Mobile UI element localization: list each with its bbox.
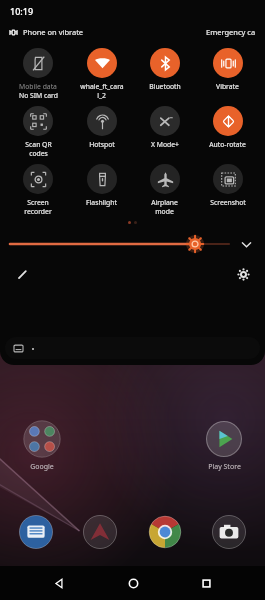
button[interactable]: Chrome xyxy=(147,514,183,550)
staticText: Screen xyxy=(27,198,49,207)
staticText: Mobile data xyxy=(19,82,57,91)
staticText: Google xyxy=(30,462,54,472)
staticText: whale_ft_cara xyxy=(80,82,124,91)
button[interactable]: Expand xyxy=(237,235,255,253)
button[interactable]: Recent apps xyxy=(191,568,221,598)
button[interactable]: Settings xyxy=(233,264,253,284)
button[interactable]: Home xyxy=(118,568,148,598)
button[interactable]: Play Store xyxy=(196,420,252,472)
button[interactable]: Edit xyxy=(12,264,32,284)
button[interactable]: Camera xyxy=(211,514,247,550)
button[interactable]: Screenshot xyxy=(196,164,259,207)
staticText: l_2 xyxy=(97,91,106,100)
button[interactable]: X Mode+ xyxy=(133,106,196,149)
staticText: Emergency ca xyxy=(206,27,256,37)
staticText: Flashlight xyxy=(86,198,117,207)
button[interactable]: Messages xyxy=(18,514,54,550)
staticText: mode xyxy=(155,207,174,216)
staticText: Bluetooth xyxy=(149,82,181,91)
staticText: 10:19 xyxy=(10,5,34,17)
staticText: X Mode+ xyxy=(151,140,179,149)
button[interactable] xyxy=(5,337,260,359)
staticText: Airplane xyxy=(151,198,178,207)
staticText: Hotspot xyxy=(89,140,115,149)
staticText: Scan QR xyxy=(25,140,52,149)
staticText: Vibrate xyxy=(216,82,239,91)
button[interactable]: Google xyxy=(14,420,70,472)
staticText: Phone on vibrate xyxy=(23,27,84,37)
button[interactable] xyxy=(10,234,229,254)
staticText: Play Store xyxy=(208,462,241,472)
button[interactable]: Auto-rotate xyxy=(196,106,259,149)
button[interactable]: Airplane xyxy=(133,164,196,216)
button[interactable]: whale_ft_cara xyxy=(70,48,133,100)
staticText: No SIM card xyxy=(19,91,58,100)
button[interactable]: Emergency ca xyxy=(206,27,256,37)
button[interactable]: Screen xyxy=(6,164,70,216)
button[interactable]: Navigation xyxy=(82,514,118,550)
button[interactable]: Hotspot xyxy=(70,106,133,149)
button[interactable]: Back xyxy=(44,568,74,598)
staticText: codes xyxy=(29,149,48,158)
staticText: Screenshot xyxy=(210,198,246,207)
button[interactable]: Mobile data xyxy=(6,48,70,100)
button[interactable]: Bluetooth xyxy=(133,48,196,91)
staticText: Auto-rotate xyxy=(209,140,246,149)
button[interactable]: Flashlight xyxy=(70,164,133,207)
button[interactable]: Scan QR xyxy=(6,106,70,158)
button[interactable]: Vibrate xyxy=(196,48,259,91)
staticText: recorder xyxy=(24,207,52,216)
